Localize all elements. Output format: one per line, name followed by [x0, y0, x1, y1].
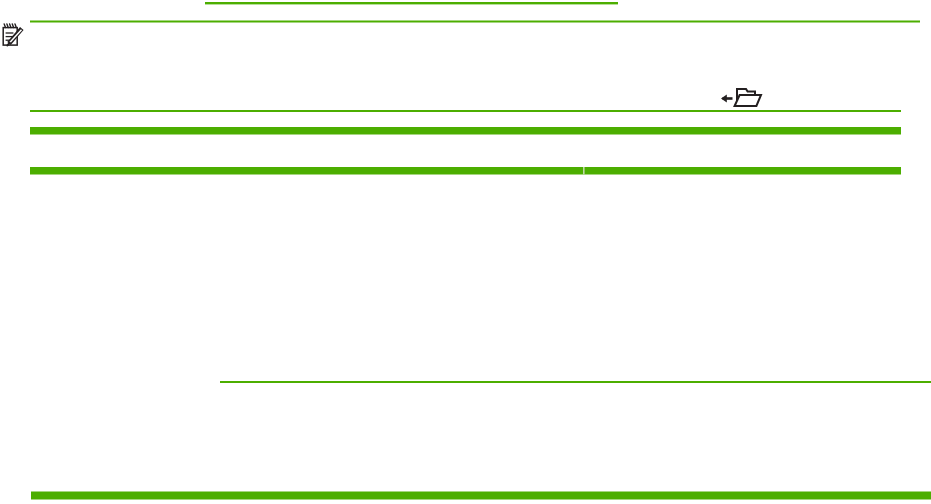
button[interactable]: Note — [1, 23, 26, 49]
button[interactable]: Open folder — [720, 85, 766, 110]
